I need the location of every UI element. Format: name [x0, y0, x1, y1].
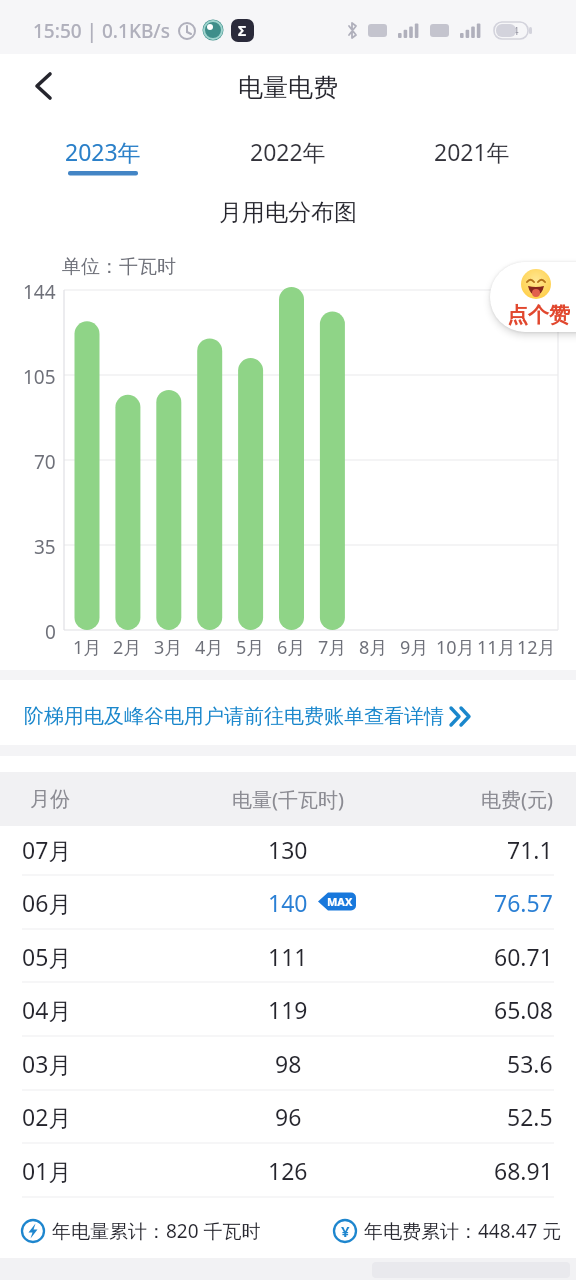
staticText: 03月	[22, 1048, 72, 1076]
button[interactable]: 2023年	[40, 136, 166, 164]
staticText: 105	[23, 364, 56, 386]
staticText: 2022年	[250, 136, 326, 164]
staticText: 0	[45, 619, 56, 641]
staticText: 74	[507, 24, 519, 38]
button[interactable]	[0, 822, 576, 875]
button[interactable]	[0, 1036, 576, 1089]
staticText: 年电量累计：820 千瓦时	[52, 1218, 261, 1244]
staticText: 53.6	[507, 1048, 553, 1076]
staticText: 01月	[22, 1155, 72, 1183]
staticText: 65.08	[494, 994, 553, 1022]
staticText: Σ	[238, 21, 247, 40]
staticText: 点个赞	[507, 302, 570, 326]
staticText: 126	[268, 1155, 308, 1183]
staticText: 119	[268, 994, 308, 1022]
staticText: 144	[23, 279, 56, 301]
staticText: 76.57	[494, 887, 553, 915]
staticText: 电量电费	[238, 72, 338, 100]
staticText: 1月	[73, 635, 102, 659]
staticText: 71.1	[507, 834, 553, 862]
staticText: 单位：千瓦时	[62, 255, 176, 277]
staticText: 7月	[318, 635, 347, 659]
staticText: 4月	[195, 635, 224, 659]
staticText: 阶梯用电及峰谷电用户请前往电费账单查看详情	[24, 704, 444, 729]
staticText: 52.5	[507, 1101, 553, 1129]
staticText: 130	[268, 834, 308, 862]
staticText: 60.71	[494, 941, 553, 969]
staticText: 96	[275, 1101, 302, 1129]
staticText: 06月	[22, 887, 72, 915]
staticText: 2023年	[65, 136, 141, 164]
staticText: 15:50 | 0.1KB/s	[33, 18, 170, 44]
button[interactable]: 2021年	[409, 136, 535, 164]
staticText: 10月	[436, 635, 475, 659]
staticText: 月份	[30, 787, 70, 812]
staticText: 2021年	[434, 136, 510, 164]
button[interactable]	[0, 929, 576, 982]
button[interactable]	[24, 66, 64, 106]
staticText: MAX	[327, 894, 353, 909]
button[interactable]	[0, 875, 576, 928]
staticText: 11月	[477, 635, 516, 659]
staticText: 12月	[517, 635, 556, 659]
staticText: 70	[34, 449, 56, 471]
staticText: 3月	[154, 635, 183, 659]
staticText: 电量(千瓦时)	[232, 786, 344, 812]
staticText: 07月	[22, 834, 72, 862]
staticText: 6月	[277, 635, 306, 659]
button[interactable]	[0, 1089, 576, 1142]
staticText: 2月	[113, 635, 142, 659]
staticText: 98	[275, 1048, 302, 1076]
button[interactable]	[0, 982, 576, 1035]
staticText: 02月	[22, 1101, 72, 1129]
staticText: 35	[34, 534, 56, 556]
staticText: 04月	[22, 994, 72, 1022]
staticText: 年电费累计：448.47 元	[364, 1218, 562, 1244]
staticText: 9月	[400, 635, 429, 659]
button[interactable]: 点个赞	[490, 262, 576, 332]
staticText: 月用电分布图	[219, 198, 357, 224]
staticText: 05月	[22, 941, 72, 969]
staticText: 140	[268, 887, 308, 915]
button[interactable]	[0, 690, 576, 742]
staticText: 8月	[359, 635, 388, 659]
staticText: 电费(元)	[481, 786, 553, 812]
staticText: 111	[268, 941, 308, 969]
button[interactable]: 2022年	[225, 136, 351, 164]
staticText: 68.91	[494, 1155, 553, 1183]
staticText: ¥	[341, 1221, 350, 1241]
button[interactable]	[0, 1143, 576, 1196]
staticText: 5月	[236, 635, 265, 659]
